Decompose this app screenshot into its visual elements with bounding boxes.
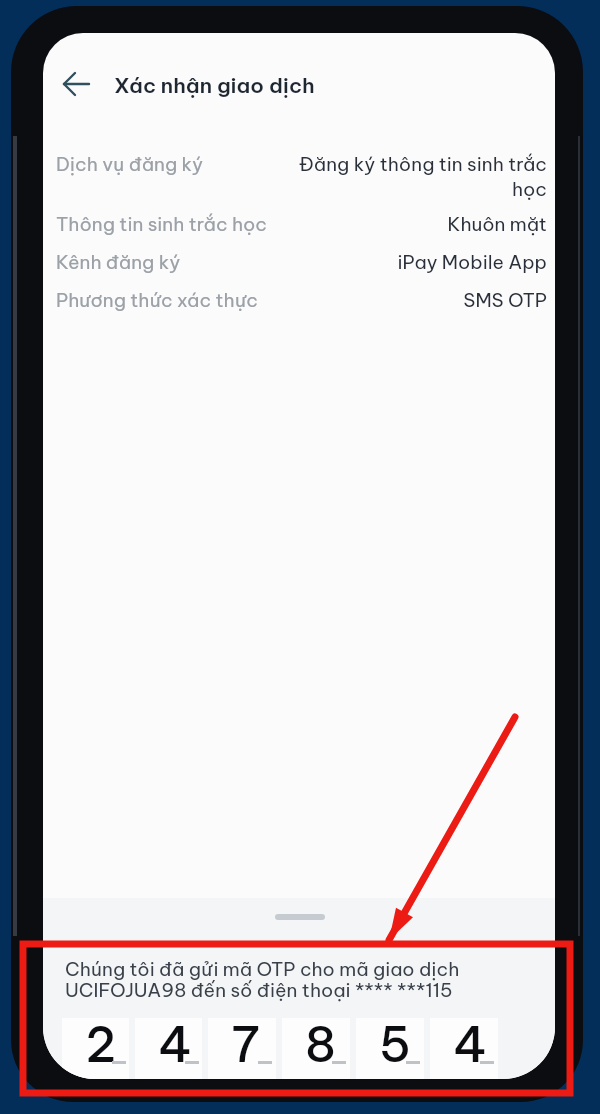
button[interactable]: Back — [54, 62, 98, 106]
button[interactable]: 4 — [135, 1018, 202, 1079]
staticText: SMS OTP — [292, 288, 547, 312]
staticText: 7 — [231, 1014, 260, 1075]
staticText: Xác nhận giao dịch — [114, 72, 315, 99]
button[interactable]: 5 — [356, 1018, 424, 1079]
staticText: 2 — [85, 1014, 117, 1075]
staticText: Chúng tôi đã gửi mã OTP cho mã giao dịch… — [65, 957, 460, 1002]
button[interactable]: 7 — [208, 1018, 276, 1079]
button[interactable]: 8 — [282, 1018, 350, 1079]
staticText: Kênh đăng ký — [56, 250, 284, 274]
staticText: 4 — [453, 1014, 488, 1075]
staticText: Thông tin sinh trắc học — [56, 212, 284, 236]
staticText: Đăng ký thông tin sinh trắc học — [292, 152, 547, 201]
button[interactable]: 2 — [62, 1018, 129, 1079]
staticText: Khuôn mặt — [292, 212, 547, 236]
button[interactable]: 4 — [430, 1018, 498, 1079]
staticText: iPay Mobile App — [292, 250, 547, 274]
staticText: Dịch vụ đăng ký — [56, 152, 284, 176]
staticText: 5 — [379, 1014, 412, 1075]
staticText: 4 — [158, 1014, 193, 1075]
staticText: 8 — [305, 1014, 336, 1075]
staticText: Phương thức xác thực — [56, 288, 284, 312]
